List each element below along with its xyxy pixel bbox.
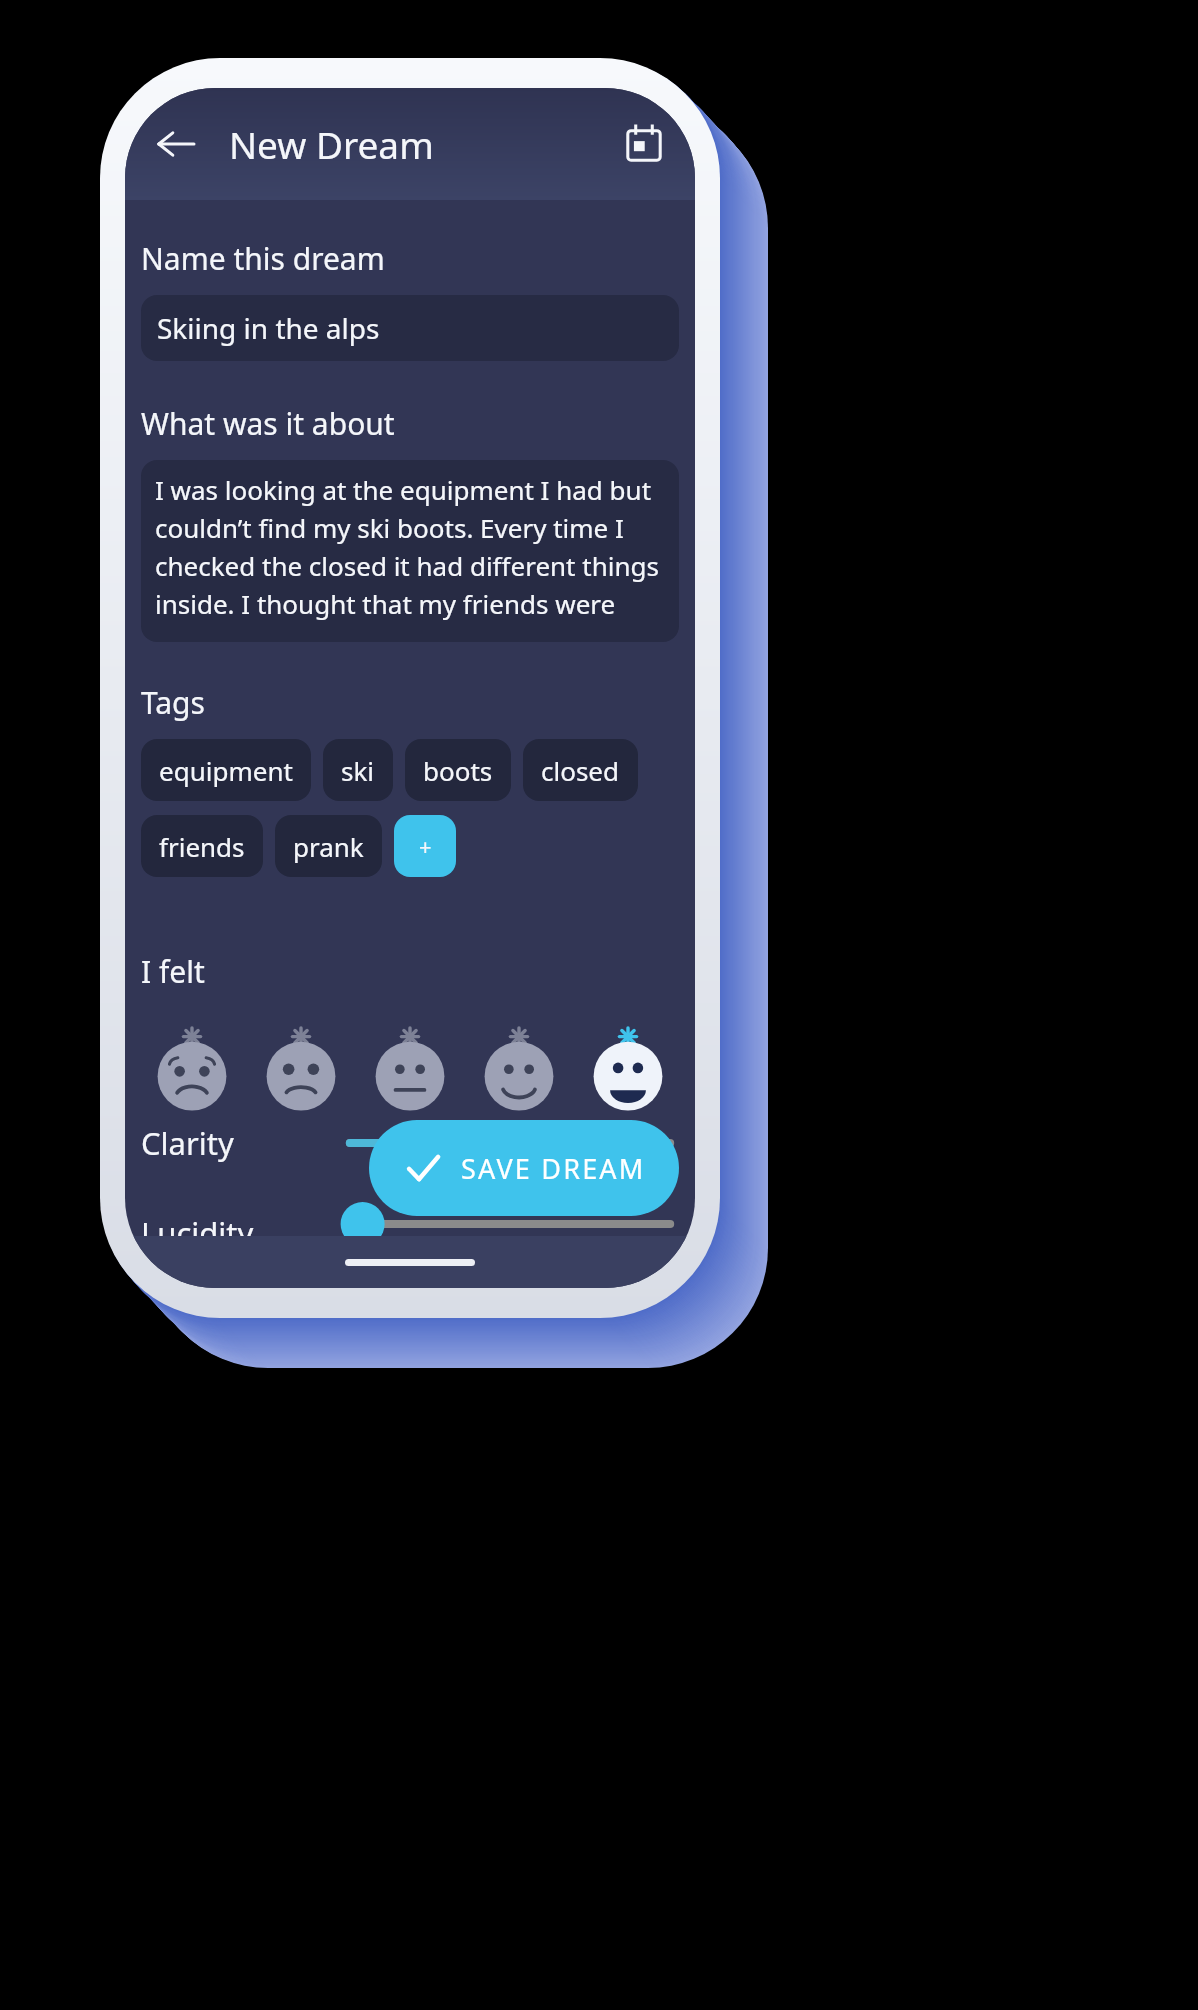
- button[interactable]: closed: [523, 739, 638, 801]
- button[interactable]: SAVE DREAM: [369, 1120, 679, 1216]
- button[interactable]: Mood level 2: [256, 1026, 346, 1116]
- button[interactable]: Back: [145, 113, 207, 175]
- staticText: boots: [423, 753, 493, 788]
- button[interactable]: friends: [141, 815, 263, 877]
- button[interactable]: Pick date: [613, 113, 675, 175]
- staticText: Clarity: [141, 1122, 234, 1164]
- staticText: New Dream: [229, 119, 434, 169]
- staticText: +: [419, 831, 432, 861]
- button[interactable]: I was looking at the equipment I had but…: [141, 460, 679, 642]
- button[interactable]: Clarity slider: [341, 1116, 679, 1170]
- button[interactable]: ski: [323, 739, 393, 801]
- button[interactable]: equipment: [141, 739, 311, 801]
- staticText: I felt: [141, 951, 205, 992]
- button[interactable]: Mood level 1: [147, 1026, 237, 1116]
- staticText: Skiing in the alps: [157, 309, 380, 347]
- button[interactable]: Skiing in the alps: [141, 295, 679, 361]
- staticText: prank: [293, 829, 364, 864]
- staticText: What was it about: [141, 403, 395, 444]
- button[interactable]: Add tag: [394, 815, 456, 877]
- button[interactable]: Mood level 4: [474, 1026, 564, 1116]
- button[interactable]: boots: [405, 739, 511, 801]
- staticText: Name this dream: [141, 238, 385, 279]
- staticText: Lucidity: [141, 1212, 254, 1236]
- staticText: ski: [341, 753, 375, 788]
- staticText: Tags: [141, 682, 205, 723]
- button[interactable]: prank: [275, 815, 382, 877]
- staticText: friends: [159, 829, 245, 864]
- staticText: closed: [541, 753, 620, 788]
- staticText: SAVE DREAM: [461, 1150, 646, 1187]
- staticText: equipment: [159, 753, 293, 788]
- staticText: I was looking at the equipment I had but…: [155, 472, 665, 630]
- button[interactable]: Lucidity slider: [341, 1212, 679, 1236]
- button[interactable]: Mood level 3: [365, 1026, 455, 1116]
- button[interactable]: Mood level 5: [583, 1026, 673, 1116]
